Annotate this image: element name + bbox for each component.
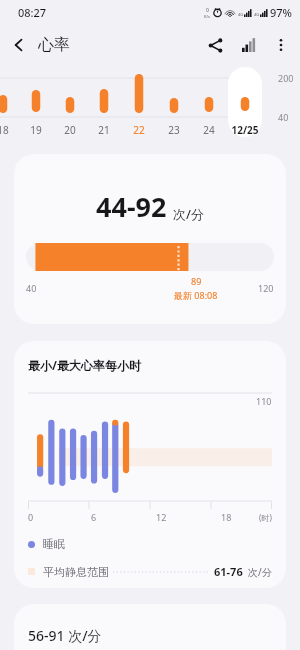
staticText: 97% xyxy=(270,5,292,20)
staticText: 睡眠 xyxy=(43,537,65,551)
staticText: 12 xyxy=(156,511,167,523)
staticText: 44-92 xyxy=(96,188,167,225)
staticText: 4G xyxy=(238,12,244,17)
staticText: 19 xyxy=(30,123,42,137)
button[interactable]: 24 xyxy=(198,121,220,139)
button[interactable]: Chart xyxy=(232,28,266,62)
staticText: (时) xyxy=(259,512,272,523)
button[interactable]: 23 xyxy=(163,121,185,139)
staticText: 次/分 xyxy=(173,205,205,223)
staticText: 200 xyxy=(278,72,294,84)
staticText: K/s xyxy=(204,14,210,19)
button[interactable]: 19 xyxy=(25,121,47,139)
staticText: 22 xyxy=(133,123,145,137)
staticText: 次/分 xyxy=(248,565,272,579)
staticText: 110 xyxy=(256,395,272,407)
button[interactable]: 最小/最大心率每小时 xyxy=(14,341,286,588)
staticText: 0 xyxy=(206,7,209,14)
staticText: 18 xyxy=(0,123,9,137)
button[interactable]: 21 xyxy=(93,121,115,139)
staticText: 平均静息范围 xyxy=(43,565,109,579)
button[interactable]: 22 xyxy=(128,121,150,139)
button[interactable]: 18 xyxy=(0,121,14,139)
button[interactable]: Back xyxy=(0,26,38,64)
staticText: 40 xyxy=(278,111,289,123)
staticText: 56-91 次/分 xyxy=(28,626,102,645)
staticText: 12/25 xyxy=(231,123,259,137)
button[interactable]: More options xyxy=(266,30,296,60)
button[interactable]: 12/25 xyxy=(225,121,265,139)
button[interactable]: 44-92 xyxy=(14,154,286,324)
staticText: 4G xyxy=(254,12,260,17)
staticText: 61-76 xyxy=(214,564,243,579)
staticText: 18 xyxy=(221,511,232,523)
staticText: 6 xyxy=(91,511,97,523)
staticText: 24 xyxy=(203,123,215,137)
staticText: 40 xyxy=(26,282,37,294)
staticText: 120 xyxy=(258,282,274,294)
staticText: 21 xyxy=(98,123,110,137)
staticText: 89 xyxy=(191,275,202,287)
staticText: 心率 xyxy=(38,35,70,55)
button[interactable]: 56-91 次/分 xyxy=(14,604,286,650)
staticText: 23 xyxy=(168,123,180,137)
staticText: 0 xyxy=(28,511,34,523)
button[interactable]: Share xyxy=(198,28,232,62)
staticText: 08:27 xyxy=(18,5,47,20)
staticText: 20 xyxy=(64,123,76,137)
button[interactable]: 20 xyxy=(59,121,81,139)
staticText: 最小/最大心率每小时 xyxy=(28,357,141,373)
staticText: 最新 08:08 xyxy=(174,289,218,301)
